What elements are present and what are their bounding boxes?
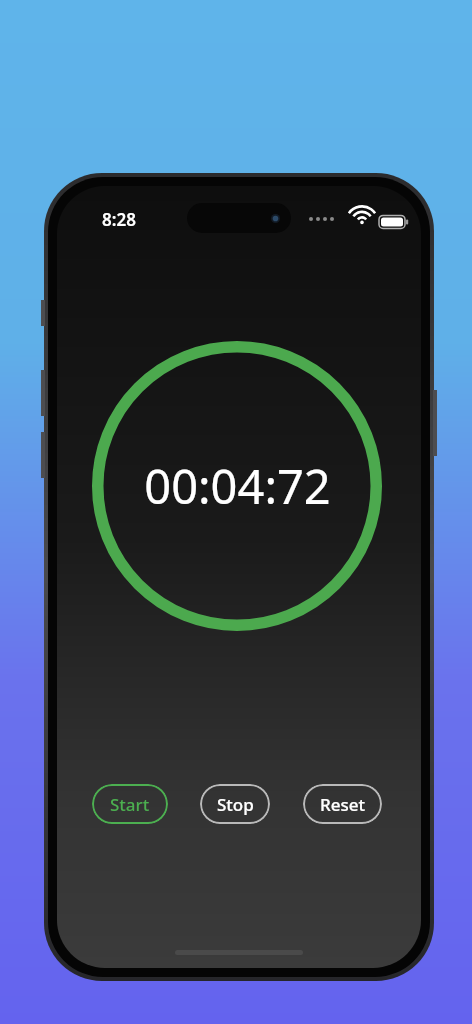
staticText: 00:04:72: [144, 454, 331, 518]
staticText: Start: [110, 793, 150, 816]
button[interactable]: Reset: [303, 784, 382, 824]
button[interactable]: Stop: [200, 784, 270, 824]
button[interactable]: Start: [92, 784, 168, 824]
staticText: Stop: [217, 793, 254, 816]
staticText: 8:28: [102, 208, 136, 231]
staticText: Reset: [320, 793, 366, 816]
